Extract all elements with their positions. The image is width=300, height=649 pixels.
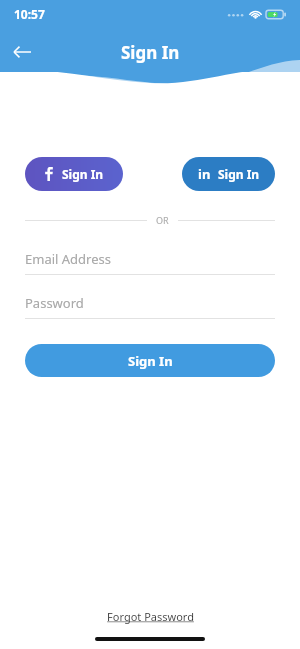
staticText: Sign In (121, 41, 180, 64)
staticText: 10:57 (14, 6, 45, 22)
button[interactable]: Email Address (25, 244, 275, 274)
staticText: Sign In (62, 166, 104, 182)
staticText: Sign In (128, 352, 173, 370)
staticText: Password (25, 294, 84, 312)
staticText: OR (156, 214, 169, 226)
button[interactable]: Back (8, 38, 36, 66)
staticText: Forgot Password (107, 609, 194, 624)
button[interactable]: Password (25, 288, 275, 318)
button[interactable]: Sign In (25, 157, 123, 191)
button[interactable]: in (182, 157, 275, 191)
button[interactable]: Sign In (25, 344, 275, 377)
staticText: in (198, 165, 211, 183)
button[interactable]: Forgot Password (101, 607, 200, 626)
staticText: Sign In (218, 166, 260, 182)
staticText: Email Address (25, 250, 111, 268)
